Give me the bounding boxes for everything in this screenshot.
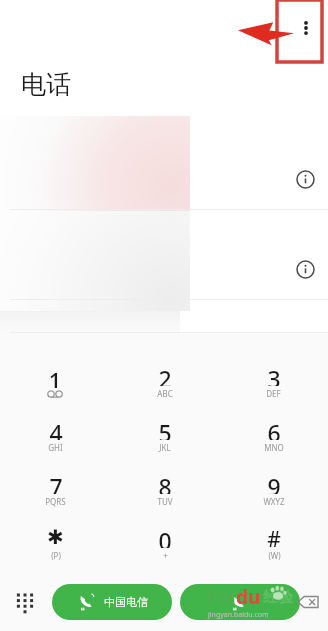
staticText: du xyxy=(236,584,261,610)
staticText: GHI xyxy=(48,442,63,453)
staticText: (P) xyxy=(51,550,61,561)
staticText: 4 xyxy=(49,417,63,440)
button[interactable]: ✱ xyxy=(0,516,110,570)
button[interactable]: 3 xyxy=(219,354,328,408)
staticText: 中国电信 xyxy=(104,595,148,609)
button[interactable]: More options xyxy=(290,12,322,44)
button[interactable]: 5 xyxy=(110,408,219,462)
staticText: 电话 xyxy=(21,69,71,100)
button[interactable]: Call details xyxy=(291,165,319,193)
button[interactable]: 0 xyxy=(110,516,219,570)
staticText: JKL xyxy=(159,442,171,453)
staticText: 6 xyxy=(267,417,281,440)
button[interactable]: Backspace xyxy=(293,586,325,618)
staticText: MNO xyxy=(264,442,284,453)
staticText: 3 xyxy=(267,363,281,386)
staticText: PQRS xyxy=(45,496,66,507)
button[interactable]: 8 xyxy=(110,462,219,516)
staticText: 2 xyxy=(158,363,172,386)
staticText: 8 xyxy=(158,471,172,494)
staticText: 9 xyxy=(267,471,281,494)
staticText: (W) xyxy=(268,550,281,561)
staticText: ABC xyxy=(157,388,173,399)
staticText: jingyan.baidu.com xyxy=(208,610,269,620)
staticText: 0 xyxy=(158,525,172,548)
staticText: DEF xyxy=(266,388,281,399)
button[interactable]: # xyxy=(219,516,328,570)
staticText: ✱ xyxy=(47,525,64,548)
staticText: # xyxy=(267,525,281,548)
staticText: WXYZ xyxy=(263,496,285,507)
staticText: Bai xyxy=(206,584,236,610)
button[interactable]: Call details xyxy=(291,255,319,283)
button[interactable]: 9 xyxy=(219,462,328,516)
button[interactable]: 4 xyxy=(0,408,110,462)
staticText: 7 xyxy=(49,471,63,494)
staticText: 1 xyxy=(48,365,62,388)
button[interactable]: 2 xyxy=(110,354,219,408)
button[interactable]: 中国电信 xyxy=(52,584,172,620)
button[interactable]: Keypad xyxy=(8,585,42,619)
staticText: TUV xyxy=(157,496,173,507)
button[interactable]: 7 xyxy=(0,462,110,516)
button[interactable]: 6 xyxy=(219,408,328,462)
staticText: 经验 xyxy=(263,588,293,607)
button[interactable]: 1 xyxy=(0,354,110,408)
staticText: + xyxy=(163,550,168,561)
staticText: 5 xyxy=(158,417,172,440)
button[interactable]: Call with SIM 2 xyxy=(180,584,300,620)
